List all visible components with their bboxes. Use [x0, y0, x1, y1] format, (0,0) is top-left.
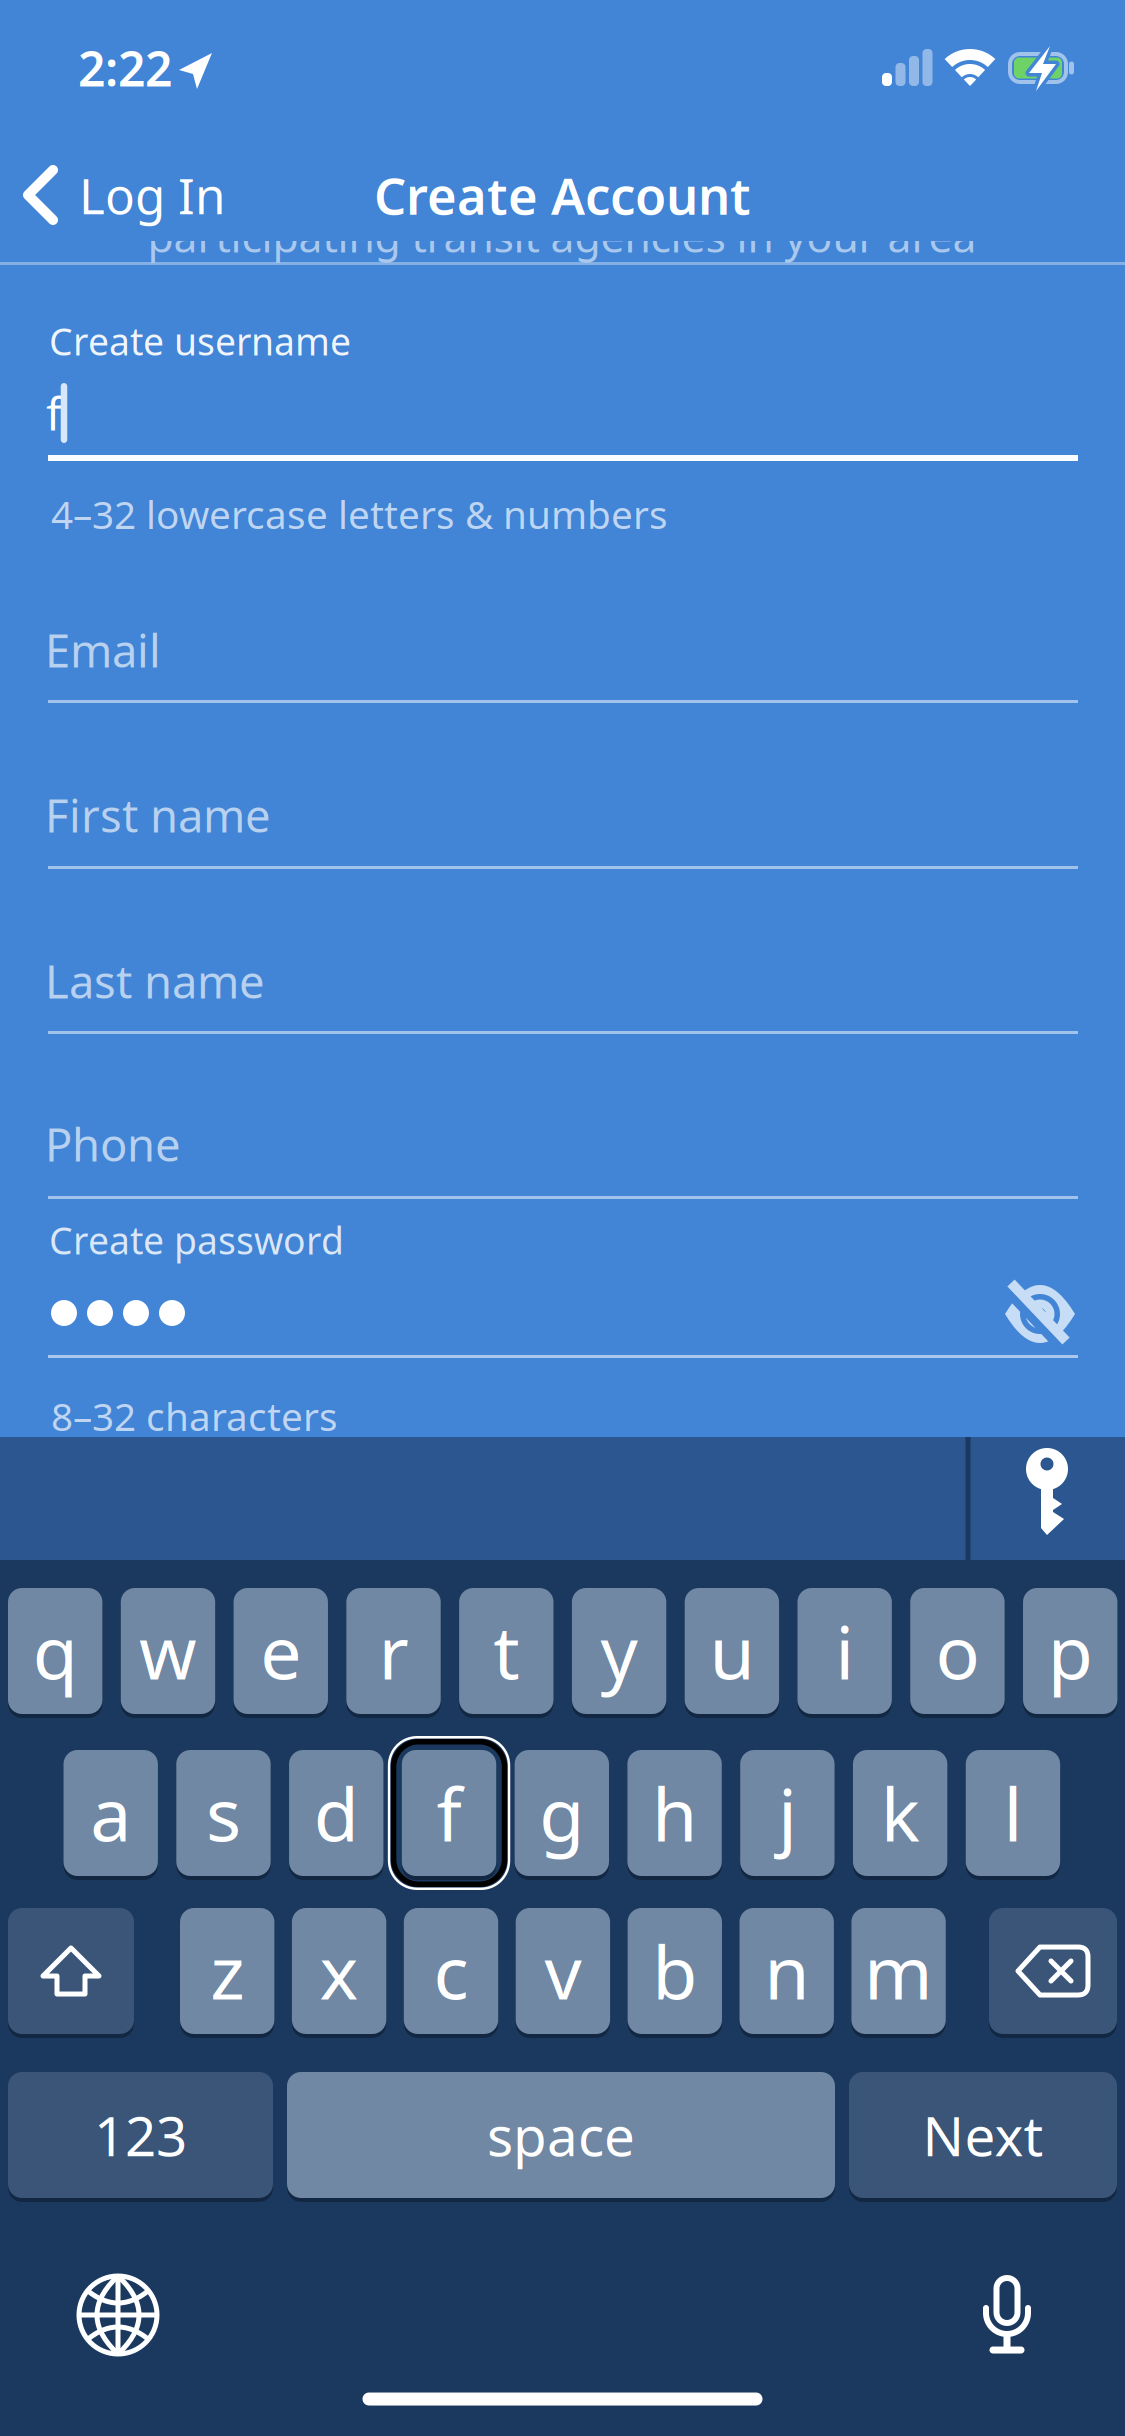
- staticText: space: [487, 2099, 635, 2171]
- button[interactable]: Next: [849, 2070, 1117, 2200]
- staticText: a: [90, 1764, 131, 1862]
- staticText: g: [539, 1764, 584, 1862]
- button[interactable]: n: [739, 1906, 834, 2036]
- button[interactable]: Shift: [8, 1906, 134, 2036]
- staticText: v: [544, 1922, 581, 2020]
- button[interactable]: Email: [48, 573, 1078, 703]
- staticText: e: [260, 1602, 301, 1700]
- staticText: d: [314, 1764, 359, 1862]
- button[interactable]: q: [8, 1586, 102, 1716]
- button[interactable]: v: [516, 1906, 610, 2036]
- staticText: i: [835, 1602, 854, 1700]
- staticText: u: [709, 1602, 754, 1700]
- staticText: o: [935, 1602, 979, 1700]
- staticText: Next: [922, 2099, 1043, 2171]
- button[interactable]: i: [797, 1586, 892, 1716]
- staticText: r: [378, 1602, 408, 1700]
- button[interactable]: f: [402, 1748, 496, 1878]
- staticText: c: [433, 1922, 468, 2020]
- button[interactable]: First name: [48, 739, 1078, 869]
- button[interactable]: Next keyboard: [78, 2275, 158, 2355]
- staticText: l: [1003, 1764, 1022, 1862]
- staticText: Create password: [49, 1215, 344, 1265]
- staticText: f: [436, 1764, 461, 1862]
- button[interactable]: d: [289, 1748, 383, 1878]
- button[interactable]: x: [292, 1906, 386, 2036]
- staticText: w: [139, 1602, 197, 1700]
- staticText: p: [1048, 1602, 1093, 1700]
- button[interactable]: u: [685, 1586, 779, 1716]
- staticText: m: [864, 1922, 933, 2020]
- staticText: Last name: [45, 951, 265, 1011]
- staticText: Create Account: [374, 161, 751, 229]
- staticText: n: [764, 1922, 809, 2020]
- button[interactable]: p: [1023, 1586, 1117, 1716]
- button[interactable]: b: [628, 1906, 722, 2036]
- staticText: participating transit agencies in your a…: [147, 208, 976, 264]
- button[interactable]: m: [851, 1906, 946, 2036]
- staticText: y: [601, 1602, 638, 1700]
- button[interactable]: Create password: [48, 1276, 1078, 1358]
- button[interactable]: c: [404, 1906, 498, 2036]
- staticText: j: [778, 1764, 797, 1862]
- button[interactable]: z: [180, 1906, 274, 2036]
- staticText: Create username: [49, 316, 351, 366]
- button[interactable]: space: [287, 2070, 835, 2200]
- button[interactable]: k: [853, 1748, 947, 1878]
- staticText: t: [493, 1602, 519, 1700]
- button[interactable]: Show password: [1003, 1277, 1077, 1351]
- button[interactable]: o: [910, 1586, 1005, 1716]
- staticText: f: [46, 383, 62, 443]
- staticText: x: [320, 1922, 359, 2020]
- button[interactable]: l: [966, 1748, 1060, 1878]
- button[interactable]: Delete: [989, 1906, 1117, 2036]
- button[interactable]: 123: [8, 2070, 273, 2200]
- staticText: s: [206, 1764, 241, 1862]
- staticText: Email: [45, 620, 161, 680]
- button[interactable]: Phone: [48, 1069, 1078, 1199]
- staticText: 2:22: [78, 36, 172, 100]
- button[interactable]: h: [627, 1748, 722, 1878]
- staticText: z: [210, 1922, 244, 2020]
- staticText: Phone: [45, 1114, 181, 1174]
- button[interactable]: Back to Log In: [23, 155, 225, 235]
- staticText: 4–32 lowercase letters & numbers: [51, 488, 668, 540]
- button[interactable]: a: [63, 1748, 158, 1878]
- staticText: First name: [45, 785, 271, 845]
- button[interactable]: Last name: [48, 904, 1078, 1034]
- staticText: 8–32 characters: [51, 1390, 338, 1442]
- staticText: b: [652, 1922, 697, 2020]
- button[interactable]: Passwords: [1017, 1442, 1077, 1552]
- button[interactable]: e: [234, 1586, 328, 1716]
- button[interactable]: y: [572, 1586, 666, 1716]
- button[interactable]: t: [459, 1586, 553, 1716]
- staticText: h: [652, 1764, 697, 1862]
- button[interactable]: Create username: [48, 375, 1078, 461]
- button[interactable]: Dictate: [979, 2273, 1035, 2357]
- staticText: q: [33, 1602, 78, 1700]
- button[interactable]: g: [515, 1748, 609, 1878]
- staticText: k: [881, 1764, 920, 1862]
- button[interactable]: j: [740, 1748, 835, 1878]
- staticText: 123: [94, 2099, 187, 2171]
- button[interactable]: s: [176, 1748, 271, 1878]
- button[interactable]: w: [121, 1586, 215, 1716]
- button[interactable]: r: [346, 1586, 441, 1716]
- staticText: Log In: [79, 162, 225, 228]
